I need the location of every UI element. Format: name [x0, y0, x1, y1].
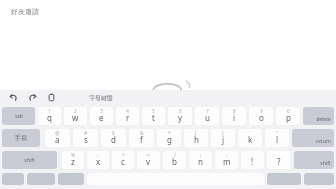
button[interactable]: Symbols — [267, 173, 301, 185]
staticText: 字母鍵盤 — [89, 94, 113, 102]
staticText: p — [286, 112, 291, 123]
button[interactable]: % — [62, 151, 84, 169]
staticText: " — [276, 130, 279, 137]
button[interactable]: - — [87, 151, 109, 169]
staticText: return — [316, 138, 331, 145]
button[interactable]: shift — [2, 151, 57, 169]
button[interactable]: 6 — [168, 107, 192, 125]
staticText: o — [259, 112, 264, 123]
staticText: % — [71, 152, 76, 159]
staticText: ' — [249, 130, 251, 137]
button[interactable]: + — [112, 151, 134, 169]
button[interactable]: Hide keyboard — [304, 173, 334, 185]
button[interactable]: Emoji — [58, 173, 84, 185]
staticText: q — [47, 112, 52, 123]
staticText: r — [126, 112, 130, 123]
button[interactable]: ( — [184, 129, 208, 147]
button[interactable]: @ — [45, 129, 70, 147]
staticText: a — [55, 134, 60, 145]
staticText: 3 — [100, 108, 103, 115]
button[interactable]: Globe — [2, 173, 24, 185]
staticText: ? — [277, 156, 281, 167]
staticText: ) — [222, 130, 224, 137]
button[interactable]: return — [292, 129, 334, 147]
staticText: l — [276, 134, 279, 145]
staticText: & — [140, 130, 144, 137]
staticText: 好友邀請 — [11, 7, 39, 16]
button[interactable]: " — [265, 129, 289, 147]
staticText: e — [99, 112, 104, 123]
staticText: 4 — [126, 108, 129, 115]
button[interactable]: 3 — [90, 107, 113, 125]
button[interactable]: ; — [189, 151, 212, 169]
staticText: j — [222, 134, 225, 145]
button[interactable]: ) — [211, 129, 235, 147]
button[interactable]: 4 — [116, 107, 139, 125]
staticText: ! — [251, 156, 254, 167]
button[interactable]: : — [215, 151, 238, 169]
staticText: . — [278, 152, 280, 159]
staticText: 7 — [206, 108, 209, 115]
staticText: 6 — [179, 108, 182, 115]
staticText: @ — [55, 130, 60, 137]
staticText: m — [223, 156, 231, 167]
button[interactable]: Paste — [43, 90, 59, 105]
staticText: - — [97, 152, 99, 159]
staticText: shift — [24, 157, 35, 164]
staticText: delete — [316, 116, 331, 123]
staticText: 8 — [233, 108, 236, 115]
staticText: z — [71, 156, 75, 167]
button[interactable]: delete — [303, 107, 334, 125]
button[interactable]: 7 — [195, 107, 219, 125]
button[interactable]: / — [163, 151, 186, 169]
staticText: b — [172, 156, 177, 167]
staticText: , — [252, 152, 254, 159]
button[interactable]: = — [137, 151, 160, 169]
button[interactable]: Undo — [5, 90, 21, 105]
button[interactable]: # — [73, 129, 98, 147]
button[interactable]: * — [157, 129, 181, 147]
button[interactable]: Redo — [24, 90, 40, 105]
staticText: y — [178, 112, 183, 123]
staticText: f — [140, 134, 143, 145]
staticText: # — [84, 130, 88, 137]
staticText: s — [84, 134, 88, 145]
staticText: / — [174, 152, 176, 159]
button[interactable]: $ — [101, 129, 126, 147]
button[interactable]: Numbers — [27, 173, 55, 185]
staticText: 2 — [74, 108, 77, 115]
button[interactable]: 2 — [64, 107, 87, 125]
button[interactable]: 字母鍵盤 — [89, 91, 113, 104]
staticText: n — [198, 156, 203, 167]
staticText: x — [96, 156, 101, 167]
staticText: ; — [200, 152, 202, 159]
button[interactable]: , — [241, 151, 264, 169]
staticText: shift — [320, 160, 331, 167]
button[interactable]: & — [129, 129, 154, 147]
staticText: d — [111, 134, 116, 145]
staticText: + — [122, 152, 125, 159]
staticText: 1 — [48, 108, 51, 115]
button[interactable]: . — [267, 151, 290, 169]
staticText: v — [146, 156, 151, 167]
button[interactable]: tab — [2, 107, 35, 125]
button[interactable]: 1 — [38, 107, 61, 125]
staticText: 0 — [287, 108, 290, 115]
staticText: h — [194, 134, 199, 145]
button[interactable]: 手寫 — [2, 129, 40, 147]
button[interactable]: 8 — [222, 107, 246, 125]
staticText: u — [205, 112, 210, 123]
button[interactable]: 9 — [249, 107, 273, 125]
button[interactable]: 0 — [276, 107, 300, 125]
button[interactable]: ' — [238, 129, 262, 147]
staticText: 5 — [152, 108, 155, 115]
staticText: ( — [195, 130, 197, 137]
staticText: 手寫 — [15, 134, 27, 142]
staticText: c — [121, 156, 125, 167]
staticText: = — [147, 152, 150, 159]
button[interactable]: 5 — [142, 107, 165, 125]
button[interactable]: shift — [294, 151, 334, 169]
staticText: 9 — [260, 108, 263, 115]
staticText: g — [167, 134, 172, 145]
